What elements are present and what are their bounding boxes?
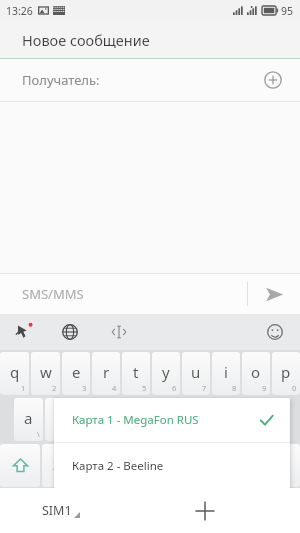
button[interactable]: e xyxy=(62,352,90,395)
button[interactable]: x xyxy=(74,444,103,487)
button[interactable]: Карта 2 - Beeline xyxy=(54,443,290,488)
button[interactable]: SIM1 xyxy=(42,502,80,519)
button[interactable]: Send xyxy=(248,274,300,314)
button[interactable]: Shift xyxy=(0,444,40,487)
button[interactable]: Карта 1 - MegaFon RUS xyxy=(54,398,290,442)
staticText: q xyxy=(10,362,20,382)
staticText: 7 xyxy=(202,383,207,393)
staticText: o xyxy=(251,362,261,382)
button[interactable]: o xyxy=(242,352,270,395)
staticText: g xyxy=(147,408,157,428)
button[interactable]: Emoji xyxy=(260,317,290,347)
staticText: Получатель: xyxy=(22,71,100,89)
button[interactable]: v xyxy=(136,444,165,487)
staticText: w xyxy=(40,362,52,382)
button[interactable]: s xyxy=(45,398,74,441)
staticText: h xyxy=(177,408,187,428)
button[interactable]: q xyxy=(0,352,29,395)
staticText: f xyxy=(119,408,125,428)
staticText: 2 xyxy=(52,383,57,393)
button[interactable]: p xyxy=(272,352,300,395)
staticText: 13:26 xyxy=(6,4,33,18)
button[interactable]: w xyxy=(31,352,60,395)
staticText: d xyxy=(86,408,96,428)
staticText: 1 xyxy=(21,383,26,393)
staticText: y xyxy=(162,362,170,382)
staticText: z xyxy=(53,454,61,474)
staticText: c xyxy=(116,454,124,474)
button[interactable]: i xyxy=(212,352,240,395)
button[interactable]: u xyxy=(182,352,210,395)
staticText: v xyxy=(147,454,155,474)
staticText: t xyxy=(133,362,139,382)
button[interactable]: Add recipient xyxy=(260,67,286,93)
staticText: 6 xyxy=(172,383,177,393)
button[interactable]: y xyxy=(152,352,180,395)
button[interactable]: SMS/MMS xyxy=(0,274,247,314)
button[interactable]: a xyxy=(14,398,43,441)
staticText: 8 xyxy=(232,383,237,393)
button[interactable]: d xyxy=(76,398,105,441)
button[interactable]: f xyxy=(107,398,136,441)
button[interactable]: Backspace xyxy=(260,444,300,487)
staticText: u xyxy=(191,362,201,382)
staticText: 5 xyxy=(142,383,147,393)
staticText: \ xyxy=(37,429,40,439)
button[interactable]: Получатель: xyxy=(0,59,300,101)
staticText: SMS/MMS xyxy=(22,285,84,303)
button[interactable]: z xyxy=(42,444,72,487)
button[interactable]: l xyxy=(258,398,286,441)
button[interactable]: t xyxy=(122,352,150,395)
button[interactable]: g xyxy=(138,398,166,441)
button[interactable]: Space xyxy=(42,490,258,533)
button[interactable]: Handwriting xyxy=(8,317,38,347)
staticText: r xyxy=(103,362,110,382)
button[interactable]: c xyxy=(105,444,134,487)
button[interactable]: r xyxy=(92,352,120,395)
staticText: Карта 1 - MegaFon RUS xyxy=(72,412,199,428)
staticText: e xyxy=(72,362,81,382)
staticText: x xyxy=(85,454,93,474)
staticText: Карта 2 - Beeline xyxy=(72,458,164,474)
button[interactable]: Cursor control xyxy=(104,317,134,347)
staticText: p xyxy=(281,362,291,382)
staticText: 95 xyxy=(281,4,294,18)
staticText: l xyxy=(270,408,274,428)
staticText: i xyxy=(224,362,228,382)
button[interactable]: Language xyxy=(55,317,85,347)
staticText: 4 xyxy=(112,383,117,393)
button[interactable]: Add xyxy=(188,494,222,528)
staticText: Новое сообщение xyxy=(22,30,150,50)
staticText: 9 xyxy=(262,383,267,393)
staticText: a xyxy=(24,408,33,428)
staticText: 0 xyxy=(292,383,297,393)
staticText: 3 xyxy=(82,383,87,393)
staticText: SIM1 xyxy=(42,502,72,519)
button[interactable]: h xyxy=(168,398,196,441)
